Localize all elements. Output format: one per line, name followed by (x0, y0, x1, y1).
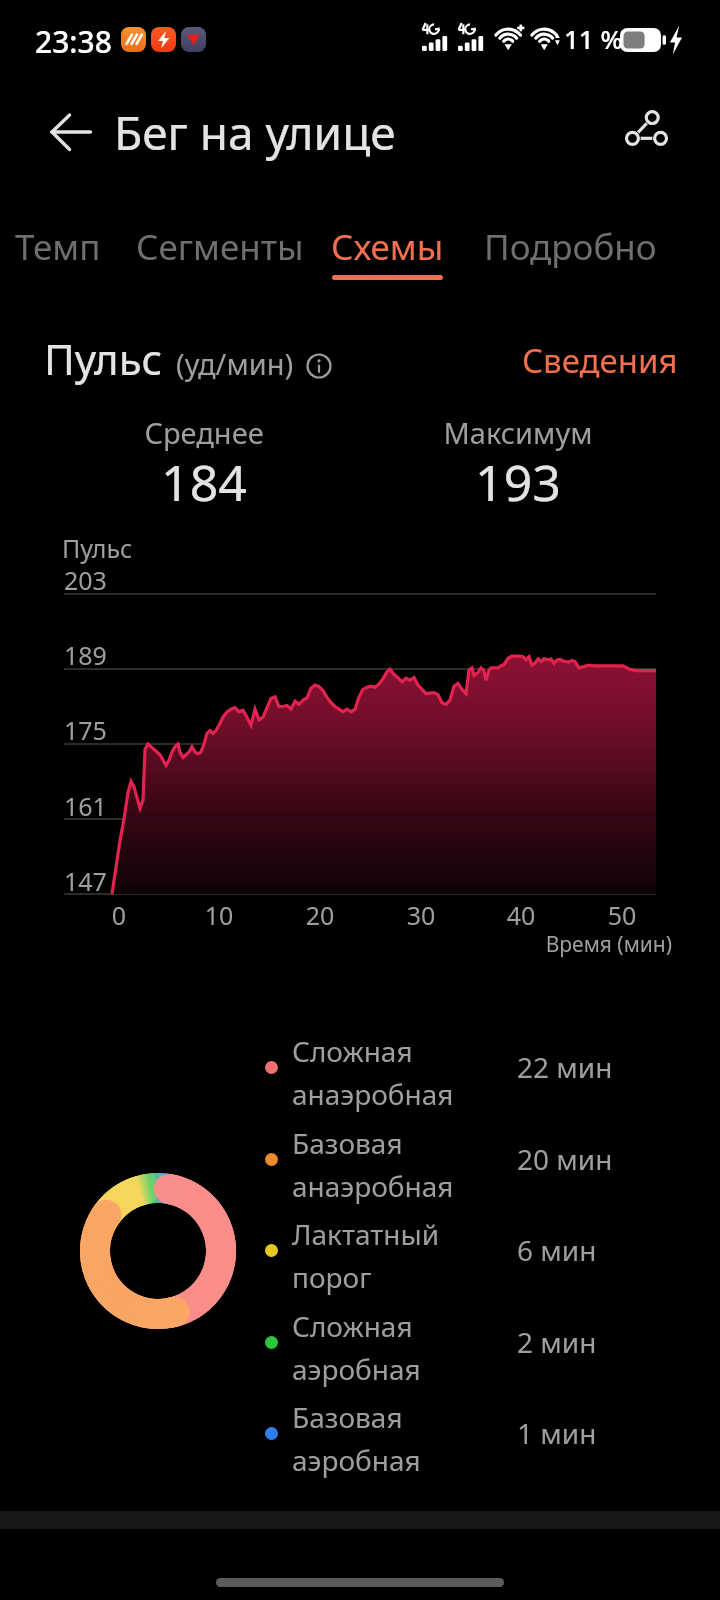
button[interactable]: Back (40, 100, 104, 164)
staticText: 30 (391, 898, 451, 932)
staticText: Пульс (44, 330, 163, 387)
button[interactable]: Темп (4, 218, 111, 288)
staticText: 2 мин (517, 1323, 597, 1361)
staticText: 22 мин (517, 1048, 613, 1086)
staticText: порог (292, 1258, 372, 1296)
staticText: 189 (64, 638, 142, 672)
staticText: Сведения (522, 338, 678, 383)
staticText: 184 (104, 448, 304, 516)
staticText: Подробно (484, 223, 657, 271)
staticText: 0 (89, 898, 149, 932)
staticText: 11 % (564, 21, 623, 56)
staticText: 6 мин (517, 1231, 597, 1269)
staticText: Среднее (104, 413, 304, 452)
staticText: аэробная (292, 1441, 421, 1479)
staticText: анаэробная (292, 1075, 454, 1113)
button[interactable]: Базовая (258, 1390, 688, 1480)
staticText: Темп (15, 223, 101, 271)
button[interactable]: Базовая (258, 1116, 688, 1206)
button[interactable]: Сведения (510, 330, 690, 390)
button[interactable]: Подробно (464, 218, 676, 288)
staticText: Схемы (331, 223, 444, 271)
staticText: 10 (189, 898, 249, 932)
staticText: Время (мин) (492, 930, 672, 959)
staticText: анаэробная (292, 1167, 454, 1205)
staticText: Лактатный (292, 1215, 440, 1253)
button[interactable]: Share (614, 98, 678, 162)
staticText: Сложная (292, 1032, 413, 1070)
staticText: 20 мин (517, 1140, 613, 1178)
staticText: Базовая (292, 1398, 403, 1436)
staticText: 147 (64, 864, 142, 898)
staticText: 20 (290, 898, 350, 932)
staticText: 193 (418, 448, 618, 516)
staticText: 23:38 (35, 21, 112, 62)
staticText: Максимум (418, 413, 618, 452)
button[interactable]: Сложная (258, 1024, 688, 1114)
staticText: 1 мин (517, 1414, 597, 1452)
staticText: 175 (64, 713, 142, 747)
button[interactable]: Сложная (258, 1299, 688, 1389)
staticText: 161 (64, 789, 142, 823)
button[interactable]: Схемы (317, 218, 457, 288)
staticText: 40 (491, 898, 551, 932)
staticText: Пульс (62, 531, 133, 565)
staticText: (уд/мин) (176, 344, 294, 383)
button[interactable]: Сегменты (124, 218, 316, 288)
staticText: Бег на улице (114, 101, 396, 164)
button[interactable]: Лактатный (258, 1207, 688, 1297)
staticText: 50 (592, 898, 652, 932)
staticText: Сегменты (136, 223, 304, 271)
staticText: Сложная (292, 1307, 413, 1345)
staticText: аэробная (292, 1350, 421, 1388)
staticText: Базовая (292, 1124, 403, 1162)
staticText: 203 (64, 563, 142, 597)
